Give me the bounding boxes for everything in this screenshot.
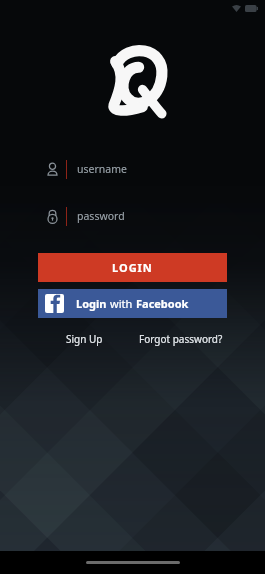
- staticText: Login: [76, 296, 110, 311]
- button[interactable]: Password field: [38, 203, 227, 229]
- button[interactable]: LOGIN: [38, 253, 227, 282]
- staticText: username: [77, 162, 127, 176]
- staticText: with: [110, 296, 136, 311]
- button[interactable]: Sign Up: [36, 329, 132, 349]
- other: Username field: [38, 162, 66, 177]
- button[interactable]: Username field: [38, 156, 227, 182]
- staticText: Forgot password?: [139, 332, 223, 346]
- staticText: LOGIN: [112, 260, 153, 275]
- button[interactable]: Login: [38, 289, 227, 318]
- button[interactable]: Forgot password?: [132, 329, 229, 349]
- other: Password field: [38, 209, 66, 224]
- staticText: Facebook: [136, 296, 189, 311]
- staticText: password: [77, 209, 125, 223]
- staticText: Sign Up: [66, 332, 103, 346]
